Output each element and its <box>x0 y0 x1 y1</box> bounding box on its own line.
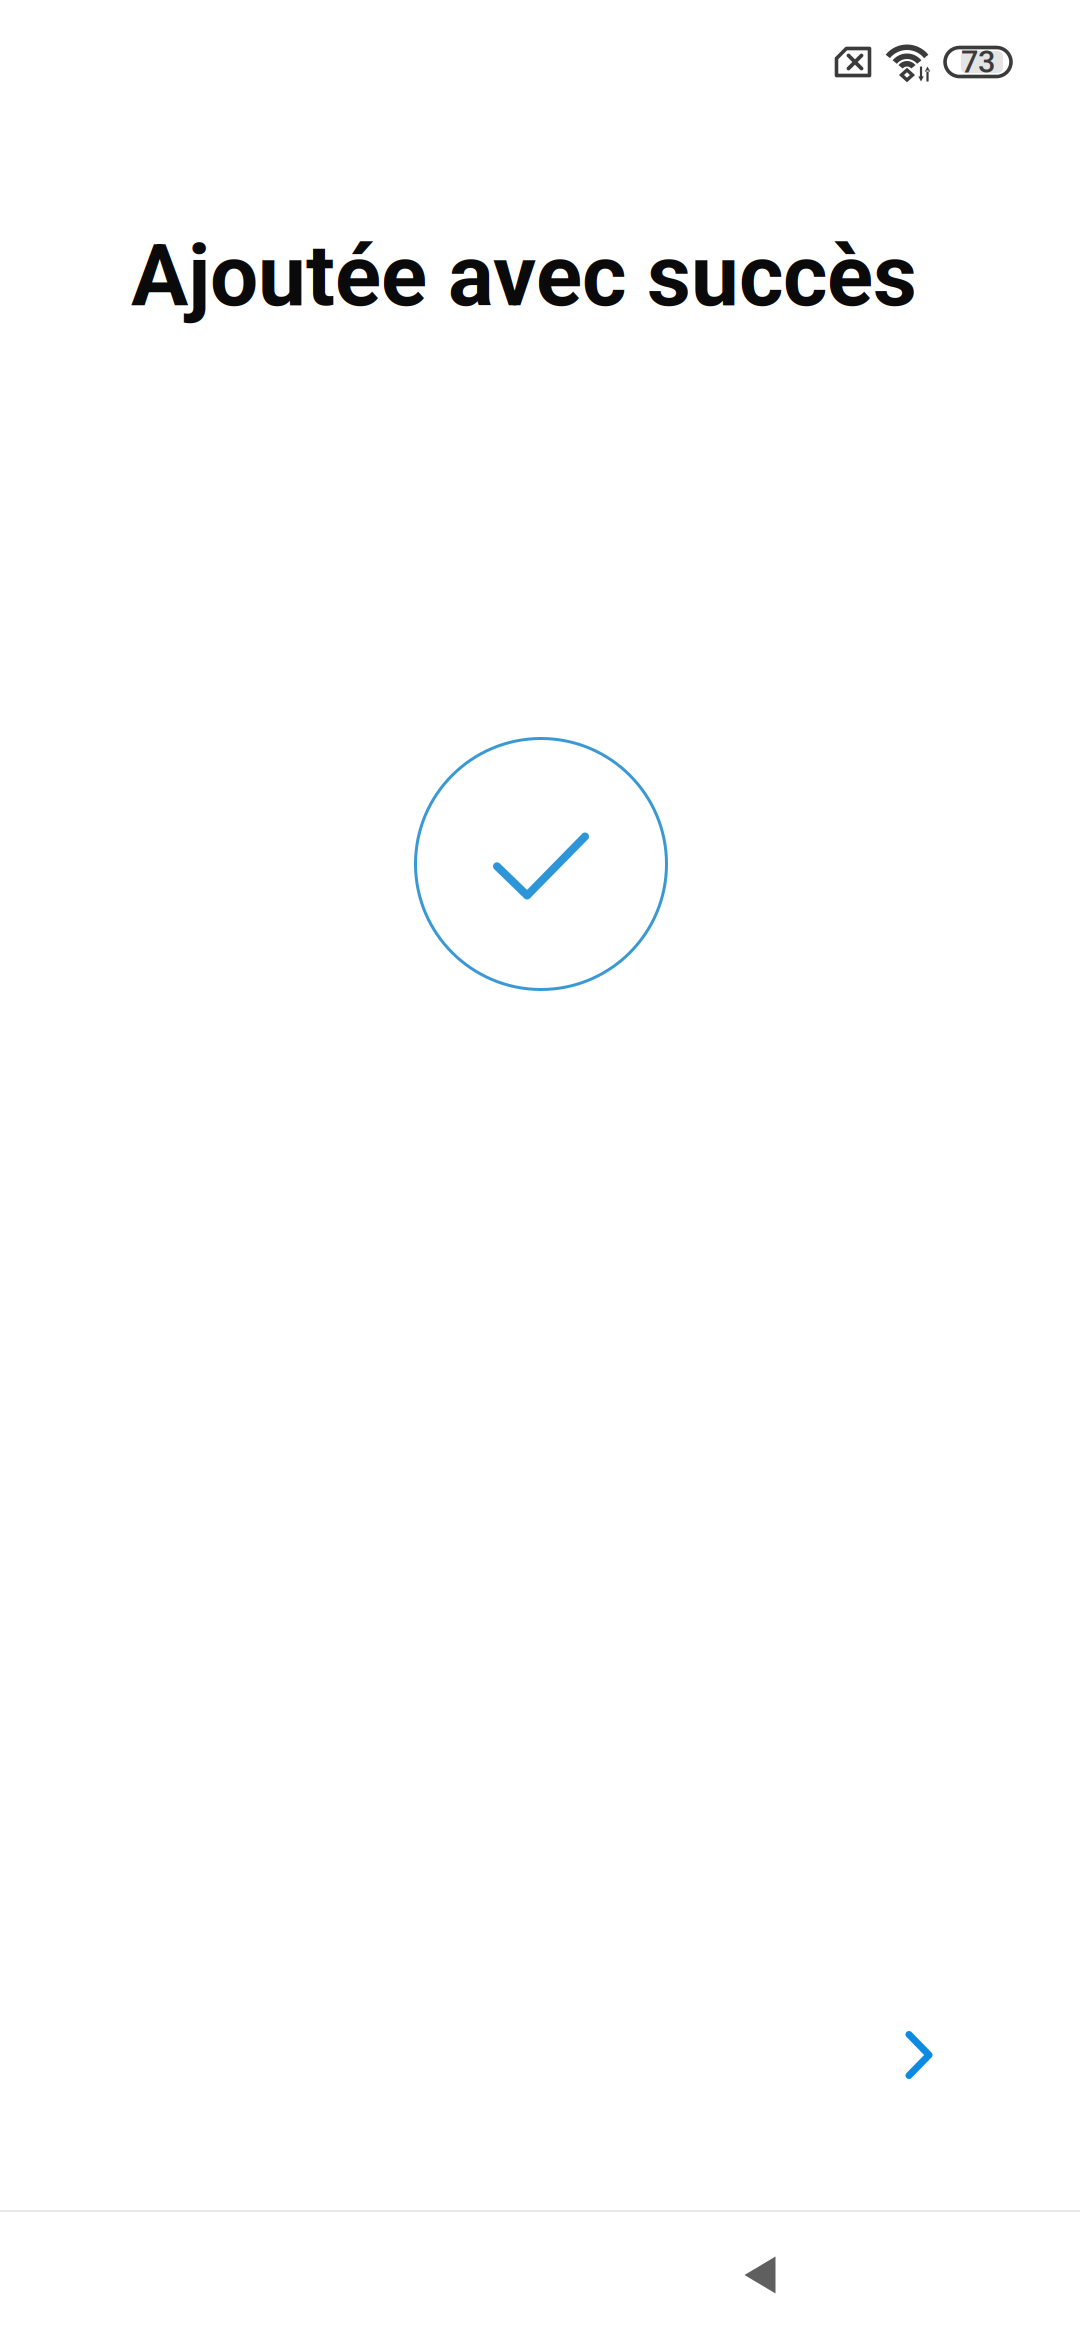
button[interactable]: Retour <box>695 2210 825 2340</box>
staticText: Ajoutée avec succès <box>131 226 917 326</box>
button[interactable]: Suivant <box>859 1995 979 2115</box>
staticText: 73 <box>961 44 995 80</box>
